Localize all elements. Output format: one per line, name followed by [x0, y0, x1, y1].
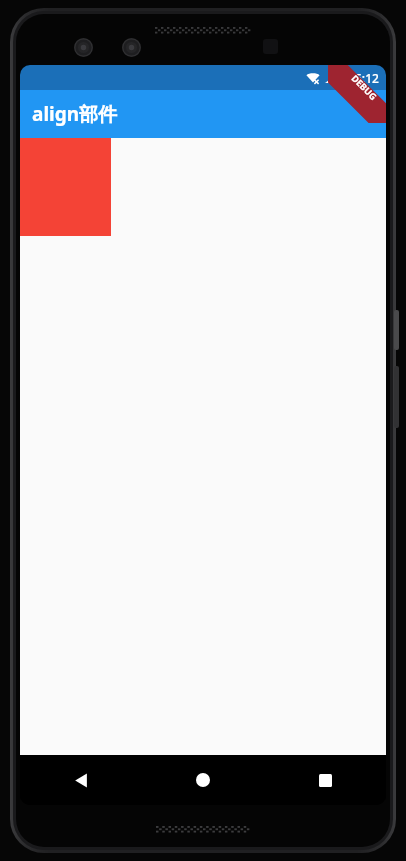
button[interactable]: Home: [142, 755, 264, 805]
button[interactable]: Back: [20, 755, 142, 805]
staticText: align部件: [32, 101, 118, 127]
staticText: 5:12: [355, 70, 379, 86]
button[interactable]: Recent apps: [264, 755, 386, 805]
staticText: DEBUG: [349, 72, 380, 102]
